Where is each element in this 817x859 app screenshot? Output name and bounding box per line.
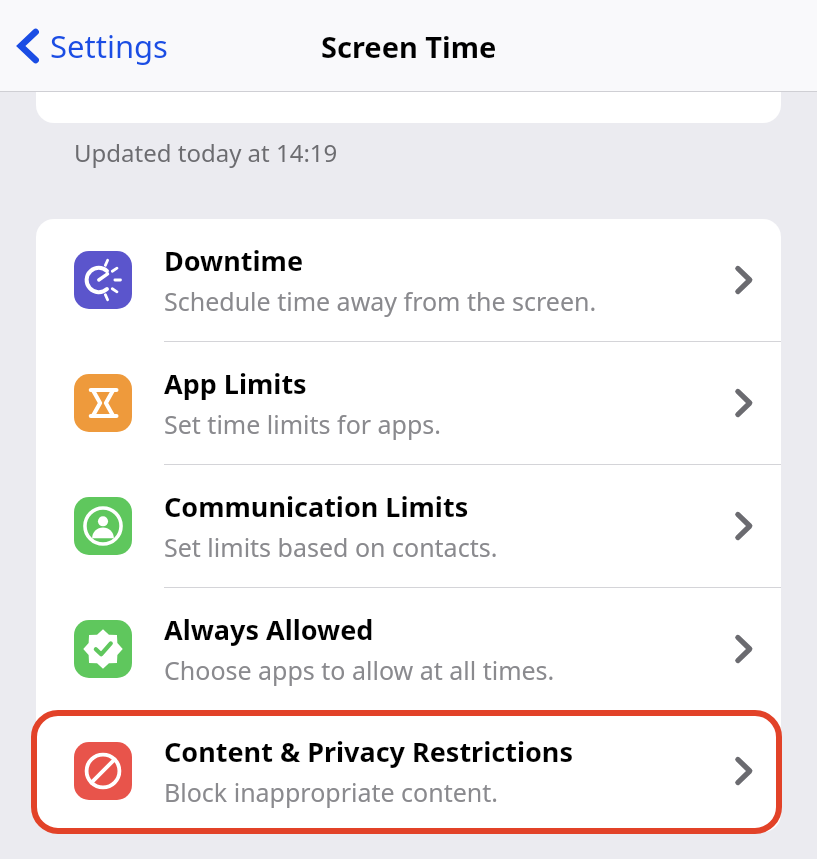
staticText: Downtime — [164, 242, 303, 279]
button[interactable]: Content & Privacy Restrictions — [36, 710, 781, 832]
button[interactable]: App Limits — [36, 342, 781, 464]
button[interactable]: Always Allowed — [36, 588, 781, 710]
other: Open — [733, 633, 753, 665]
button[interactable]: Communication Limits — [36, 465, 781, 587]
staticText: Choose apps to allow at all times. — [164, 653, 555, 687]
other: Open — [733, 387, 753, 419]
staticText: Updated today at 14:19 — [74, 136, 338, 169]
staticText: Content & Privacy Restrictions — [164, 733, 573, 770]
staticText: Always Allowed — [164, 611, 374, 648]
staticText: Set time limits for apps. — [164, 407, 442, 441]
staticText: Set limits based on contacts. — [164, 530, 498, 564]
staticText: Block inappropriate content. — [164, 775, 498, 809]
staticText: Schedule time away from the screen. — [164, 284, 597, 318]
other: Open — [733, 510, 753, 542]
staticText: Screen Time — [321, 27, 497, 66]
button[interactable]: Settings — [8, 17, 176, 75]
staticText: Communication Limits — [164, 488, 469, 525]
other: Open — [733, 755, 753, 787]
staticText: App Limits — [164, 365, 307, 402]
other: Open — [733, 264, 753, 296]
button[interactable]: Downtime — [36, 219, 781, 341]
staticText: Settings — [50, 25, 168, 67]
